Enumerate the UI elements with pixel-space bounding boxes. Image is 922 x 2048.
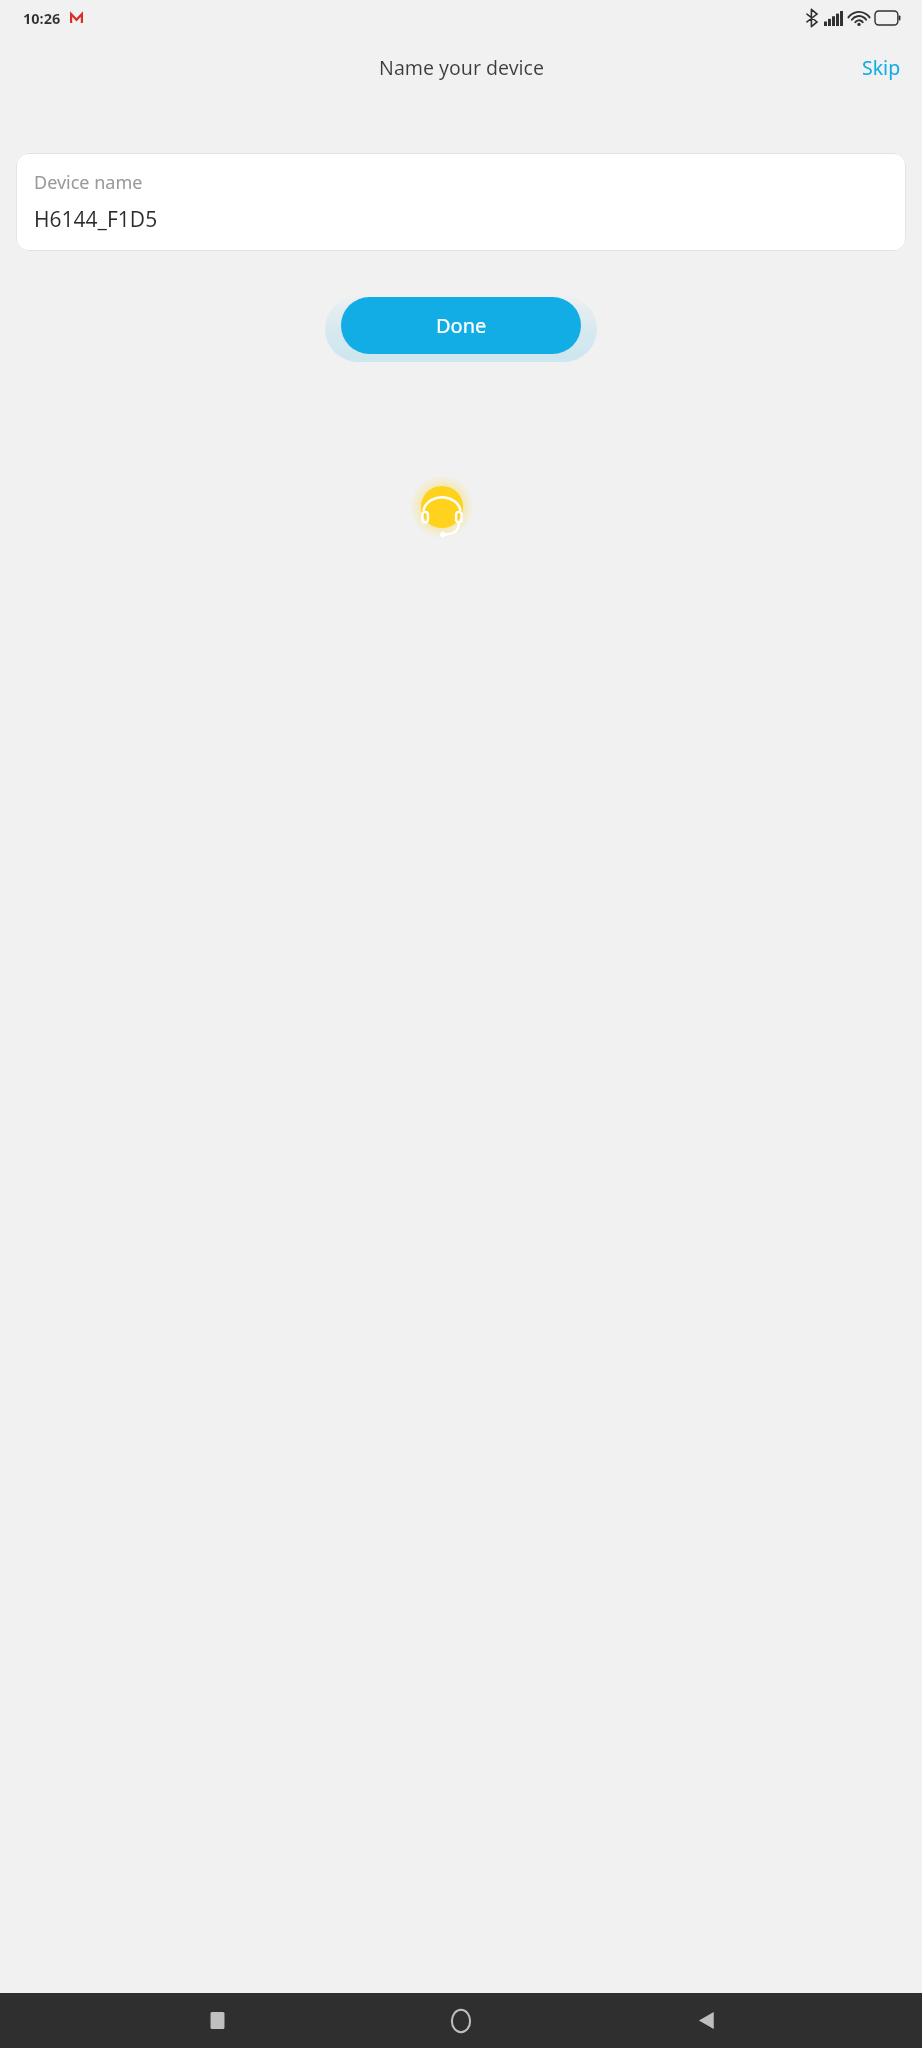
button[interactable]: Back <box>678 1993 734 2048</box>
button[interactable]: Home <box>433 1993 489 2048</box>
button[interactable]: Recent apps <box>189 1993 245 2048</box>
staticText: Name your device <box>379 54 544 81</box>
button[interactable]: Device name <box>16 153 906 251</box>
staticText: Done <box>436 312 487 339</box>
staticText: Skip <box>862 54 901 81</box>
staticText: Device name <box>34 170 143 195</box>
button[interactable]: Customer support <box>410 475 474 539</box>
button[interactable]: Done <box>341 297 581 354</box>
staticText: 10:26 <box>23 8 61 28</box>
button[interactable]: Skip <box>841 46 922 89</box>
staticText: H6144_F1D5 <box>34 205 158 234</box>
